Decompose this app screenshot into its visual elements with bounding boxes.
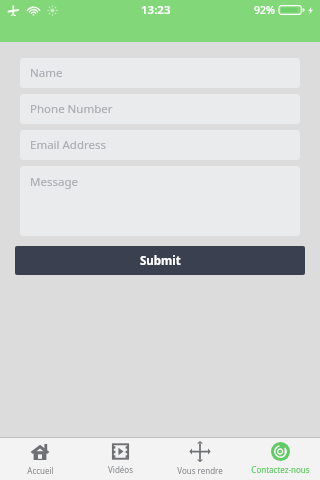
button[interactable]: Name xyxy=(20,58,300,88)
button[interactable]: Submit xyxy=(15,246,305,275)
other: Vidéos xyxy=(111,442,130,461)
button[interactable]: Vous rendre xyxy=(160,438,240,480)
staticText: Contactez-nous xyxy=(251,464,310,475)
button[interactable]: Vidéos xyxy=(80,438,160,480)
button[interactable]: Contactez-nous xyxy=(240,438,320,480)
staticText: Phone Number xyxy=(30,101,113,117)
staticText: Vidéos xyxy=(108,464,133,475)
staticText: 13:23 xyxy=(141,2,171,18)
other: Contactez-nous xyxy=(271,442,290,461)
staticText: Submit xyxy=(140,253,181,269)
staticText: Vous rendre xyxy=(177,465,223,476)
button[interactable]: Phone Number xyxy=(20,94,300,124)
other: Vous rendre xyxy=(190,442,210,462)
button[interactable]: Message xyxy=(20,166,300,236)
staticText: Accueil xyxy=(27,465,54,476)
staticText: 92% xyxy=(254,3,275,17)
staticText: Message xyxy=(30,174,78,190)
button[interactable]: Accueil xyxy=(0,438,80,480)
staticText: Name xyxy=(30,65,63,81)
other: Accueil xyxy=(30,442,50,462)
button[interactable]: Email Address xyxy=(20,130,300,160)
staticText: Email Address xyxy=(30,137,107,153)
